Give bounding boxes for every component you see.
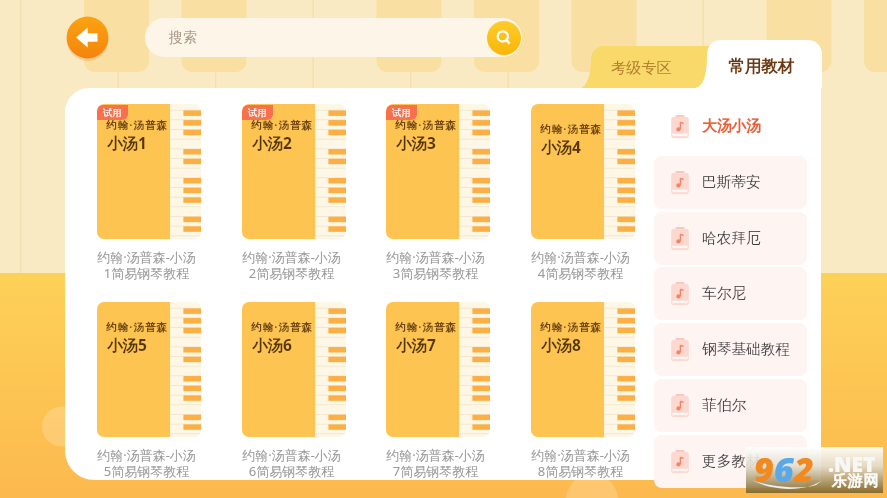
- staticText: 考级专区: [611, 58, 672, 77]
- staticText: 约翰·汤普森-小汤4简易钢琴教程: [529, 248, 632, 282]
- staticText: 小汤2: [252, 132, 292, 153]
- button[interactable]: 搜索: [145, 18, 522, 57]
- button[interactable]: Search: [487, 21, 521, 55]
- button[interactable]: Back: [66, 16, 109, 59]
- staticText: 约翰·汤普森-小汤5简易钢琴教程: [95, 446, 198, 480]
- staticText: 试用: [103, 107, 122, 119]
- button[interactable]: 约翰·汤普森: [386, 302, 490, 437]
- staticText: 乐游网: [831, 472, 879, 491]
- button[interactable]: 常用教材: [707, 40, 822, 88]
- staticText: 小汤7: [396, 334, 436, 355]
- staticText: 小汤6: [252, 334, 292, 355]
- staticText: 常用教材: [728, 56, 794, 77]
- button[interactable]: 约翰·汤普森: [531, 302, 635, 437]
- staticText: .NET: [828, 450, 876, 479]
- staticText: 试用: [392, 107, 411, 119]
- staticText: 小汤4: [541, 136, 581, 157]
- staticText: 约翰·汤普森: [395, 320, 458, 334]
- staticText: 哈农拜厄: [702, 229, 761, 248]
- button[interactable]: 试用: [242, 104, 346, 239]
- staticText: 约翰·汤普森-小汤1简易钢琴教程: [95, 248, 198, 282]
- staticText: 巴斯蒂安: [702, 173, 761, 192]
- staticText: 约翰·汤普森: [251, 118, 314, 132]
- staticText: 试用: [248, 107, 267, 119]
- button[interactable]: 更多教材: [654, 435, 807, 488]
- button[interactable]: 约翰·汤普森: [242, 302, 346, 437]
- staticText: 小汤8: [541, 334, 581, 355]
- staticText: 约翰·汤普森-小汤6简易钢琴教程: [240, 446, 343, 480]
- staticText: 菲伯尔: [702, 396, 747, 415]
- staticText: 6: [774, 446, 794, 492]
- staticText: 小汤3: [396, 132, 436, 153]
- staticText: 大汤小汤: [702, 117, 761, 136]
- button[interactable]: 考级专区: [576, 46, 714, 90]
- button[interactable]: 车尔尼: [654, 267, 807, 320]
- button[interactable]: 大汤小汤: [654, 100, 807, 153]
- staticText: 车尔尼: [702, 284, 747, 303]
- staticText: 约翰·汤普森: [251, 320, 314, 334]
- button[interactable]: 试用: [97, 104, 201, 239]
- button[interactable]: 菲伯尔: [654, 379, 807, 432]
- staticText: 2: [794, 446, 814, 492]
- staticText: 约翰·汤普森-小汤2简易钢琴教程: [240, 248, 343, 282]
- staticText: 约翰·汤普森: [540, 122, 603, 136]
- button[interactable]: 试用: [386, 104, 490, 239]
- staticText: 约翰·汤普森: [540, 320, 603, 334]
- staticText: 搜索: [169, 29, 197, 47]
- staticText: 约翰·汤普森-小汤7简易钢琴教程: [384, 446, 487, 480]
- staticText: 钢琴基础教程: [702, 340, 791, 359]
- button[interactable]: 约翰·汤普森: [97, 302, 201, 437]
- button[interactable]: 钢琴基础教程: [654, 323, 807, 376]
- staticText: 约翰·汤普森: [106, 320, 169, 334]
- staticText: 约翰·汤普森-小汤8简易钢琴教程: [529, 446, 632, 480]
- button[interactable]: 哈农拜厄: [654, 212, 807, 265]
- button[interactable]: 巴斯蒂安: [654, 156, 807, 209]
- button[interactable]: 约翰·汤普森: [531, 104, 635, 239]
- staticText: 9: [754, 446, 774, 492]
- staticText: 小汤5: [107, 334, 147, 355]
- staticText: 约翰·汤普森: [395, 118, 458, 132]
- staticText: 小汤1: [107, 132, 147, 153]
- staticText: 更多教材: [702, 452, 761, 471]
- staticText: 约翰·汤普森: [106, 118, 169, 132]
- staticText: 约翰·汤普森-小汤3简易钢琴教程: [384, 248, 487, 282]
